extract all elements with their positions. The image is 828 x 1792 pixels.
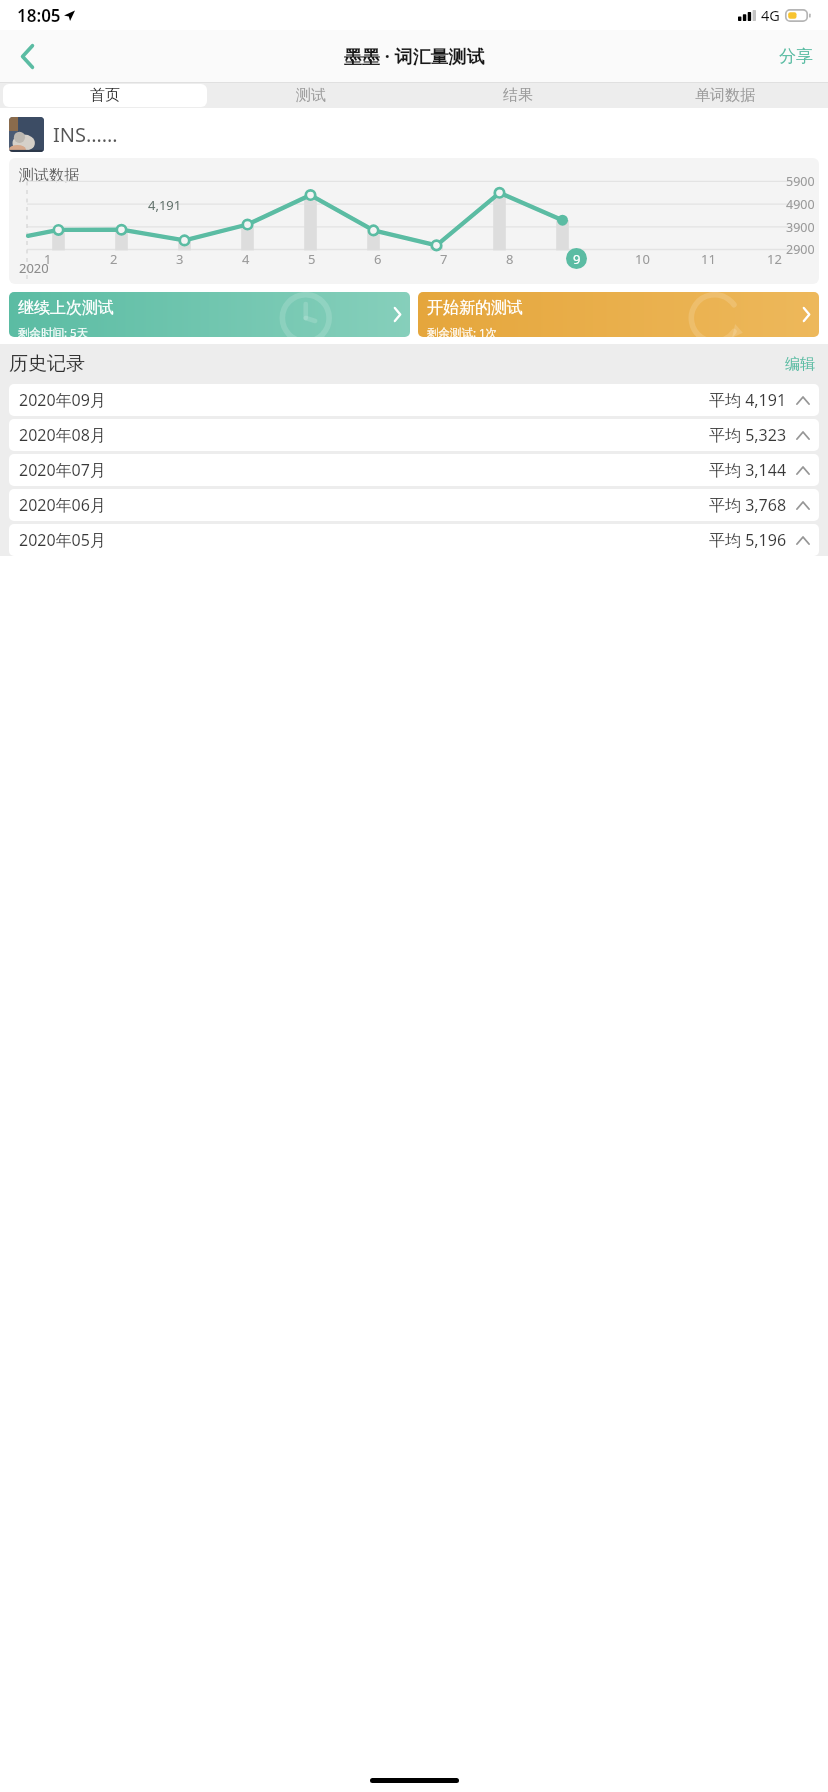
button[interactable]: 7	[411, 248, 477, 269]
staticText: 平均 4,191	[709, 389, 787, 411]
button[interactable]: 2020年09月	[9, 384, 819, 416]
staticText: 单词数据	[695, 86, 755, 105]
staticText: 历史记录	[9, 352, 85, 376]
staticText: 平均 3,768	[709, 494, 787, 516]
staticText: 3900	[786, 219, 815, 236]
staticText: 2020年07月	[19, 459, 106, 481]
staticText: 继续上次测试	[18, 298, 114, 318]
staticText: 10	[635, 250, 650, 268]
button[interactable]: 6	[345, 248, 411, 269]
staticText: 2020年09月	[19, 389, 106, 411]
staticText: 编辑	[785, 355, 815, 374]
button[interactable]: 2	[81, 248, 147, 269]
button[interactable]: 单词数据	[621, 83, 828, 108]
staticText: 4,191	[148, 196, 182, 214]
button[interactable]: 9	[543, 248, 609, 269]
button[interactable]: 12	[741, 248, 807, 269]
staticText: 开始新的测试	[427, 298, 523, 318]
button[interactable]: 1	[15, 248, 81, 269]
staticText: 2020年08月	[19, 424, 106, 446]
staticText: 5900	[786, 173, 815, 190]
button[interactable]: 2020年07月	[9, 454, 819, 486]
staticText: 3	[176, 250, 184, 268]
button[interactable]: 继续上次测试	[9, 292, 410, 337]
staticText: 剩余测试: 1次	[427, 325, 498, 337]
staticText: 18:05	[17, 4, 61, 27]
button[interactable]: 开始新的测试	[418, 292, 819, 337]
staticText: 1	[44, 250, 52, 268]
button[interactable]: 10	[609, 248, 675, 269]
staticText: 结果	[503, 86, 533, 105]
staticText: 6	[374, 250, 382, 268]
button[interactable]: 首页	[3, 84, 207, 107]
staticText: 4900	[786, 196, 815, 213]
button[interactable]: 4	[213, 248, 279, 269]
staticText: INS……	[53, 121, 118, 148]
staticText: 测试	[296, 86, 326, 105]
staticText: 平均 3,144	[709, 459, 787, 481]
staticText: 平均 5,196	[709, 529, 787, 551]
staticText: 9	[573, 250, 581, 268]
staticText: 4	[242, 250, 250, 268]
button[interactable]: 2020年06月	[9, 489, 819, 521]
staticText: 2900	[786, 241, 815, 258]
staticText: 墨墨 · 词汇量测试	[344, 44, 485, 69]
staticText: 8	[506, 250, 514, 268]
staticText: 4G	[761, 5, 780, 25]
staticText: 2020	[19, 259, 49, 277]
staticText: 平均 5,323	[709, 424, 787, 446]
button[interactable]: 2020年05月	[9, 524, 819, 556]
button[interactable]: 测试	[207, 83, 414, 108]
button[interactable]: 结果	[414, 83, 621, 108]
button[interactable]: 11	[675, 248, 741, 269]
button[interactable]: Back	[0, 30, 54, 82]
staticText: 5	[308, 250, 316, 268]
staticText: 7	[440, 250, 448, 268]
staticText: 12	[767, 250, 782, 268]
button[interactable]: 8	[477, 248, 543, 269]
button[interactable]: 5	[279, 248, 345, 269]
staticText: 2020年06月	[19, 494, 106, 516]
staticText: 2	[110, 250, 118, 268]
button[interactable]: 编辑	[781, 351, 819, 378]
button[interactable]: 分享	[764, 30, 828, 82]
staticText: 分享	[779, 46, 813, 67]
staticText: 2020年05月	[19, 529, 106, 551]
staticText: 测试数据	[19, 166, 79, 185]
button[interactable]: 3	[147, 248, 213, 269]
staticText: 剩余时间: 5天	[18, 325, 89, 337]
staticText: 11	[701, 250, 716, 268]
button[interactable]: 2020年08月	[9, 419, 819, 451]
staticText: 首页	[90, 86, 120, 105]
